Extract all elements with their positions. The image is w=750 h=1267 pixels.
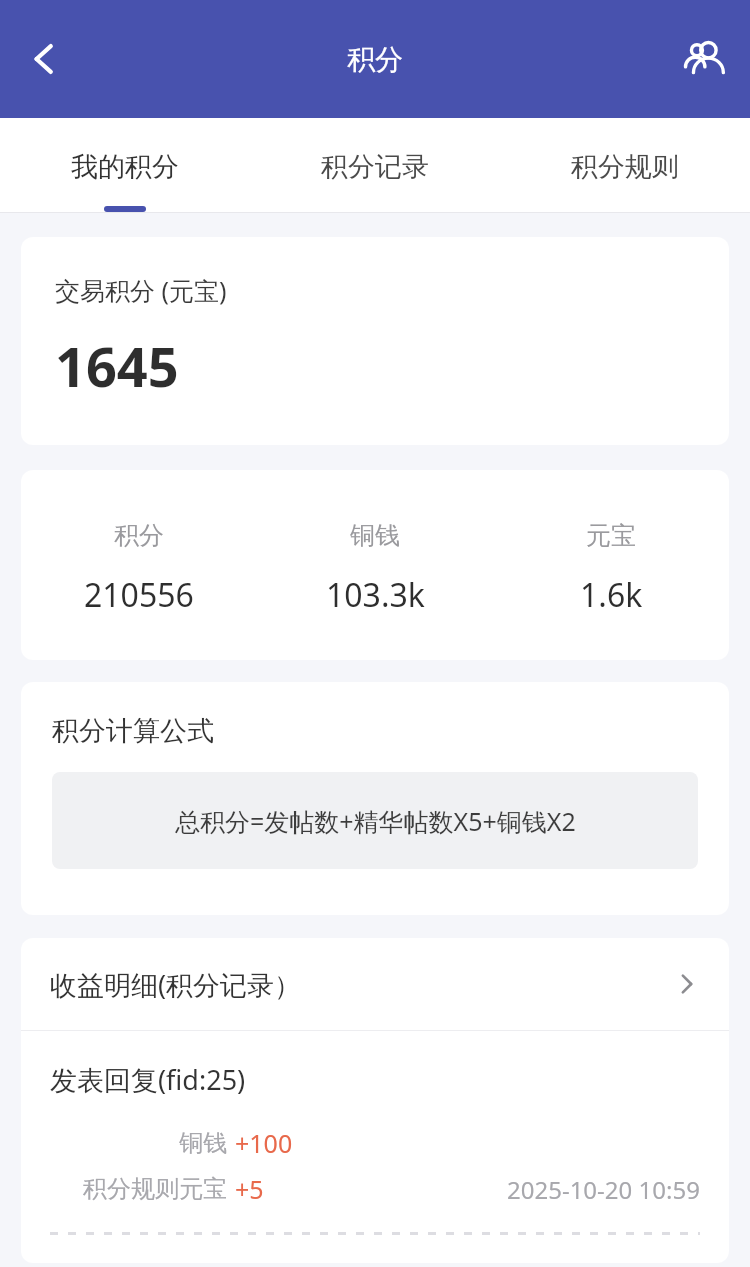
button[interactable]: 积分 — [21, 470, 729, 660]
staticText: 发表回复(fid:25) — [50, 1061, 246, 1098]
button[interactable]: 积分记录 — [250, 118, 500, 212]
button[interactable]: 收益明细(积分记录） — [21, 938, 729, 1030]
staticText: 积分计算公式 — [52, 714, 214, 748]
staticText: +5 — [235, 1172, 264, 1206]
staticText: 铜钱 — [179, 1128, 227, 1158]
staticText: 积分 — [114, 520, 164, 551]
staticText: 210556 — [84, 573, 194, 617]
button[interactable]: Back — [8, 23, 80, 95]
staticText: 积分记录 — [321, 150, 429, 184]
staticText: 积分规则元宝 — [83, 1174, 227, 1204]
staticText: 铜钱 — [350, 520, 400, 551]
staticText: 1.6k — [580, 573, 643, 617]
staticText: 103.3k — [326, 573, 425, 617]
button[interactable]: 交易积分 (元宝) — [21, 237, 729, 445]
staticText: 我的积分 — [71, 150, 179, 184]
staticText: 2025-10-20 10:59 — [507, 1173, 700, 1206]
button[interactable]: Friends — [668, 23, 740, 95]
staticText: 积分规则 — [571, 150, 679, 184]
staticText: 收益明细(积分记录） — [50, 966, 674, 1003]
button[interactable]: 我的积分 — [0, 118, 250, 212]
staticText: 元宝 — [586, 520, 636, 551]
staticText: 积分 — [347, 42, 403, 77]
staticText: 交易积分 (元宝) — [55, 273, 227, 307]
staticText: +100 — [235, 1126, 293, 1160]
staticText: 总积分=发帖数+精华帖数X5+铜钱X2 — [175, 804, 576, 838]
button[interactable]: 积分计算公式 — [21, 682, 729, 915]
button[interactable]: 积分规则 — [500, 118, 750, 212]
staticText: 1645 — [55, 329, 179, 403]
button[interactable]: 发表回复(fid:25) — [21, 1031, 729, 1263]
